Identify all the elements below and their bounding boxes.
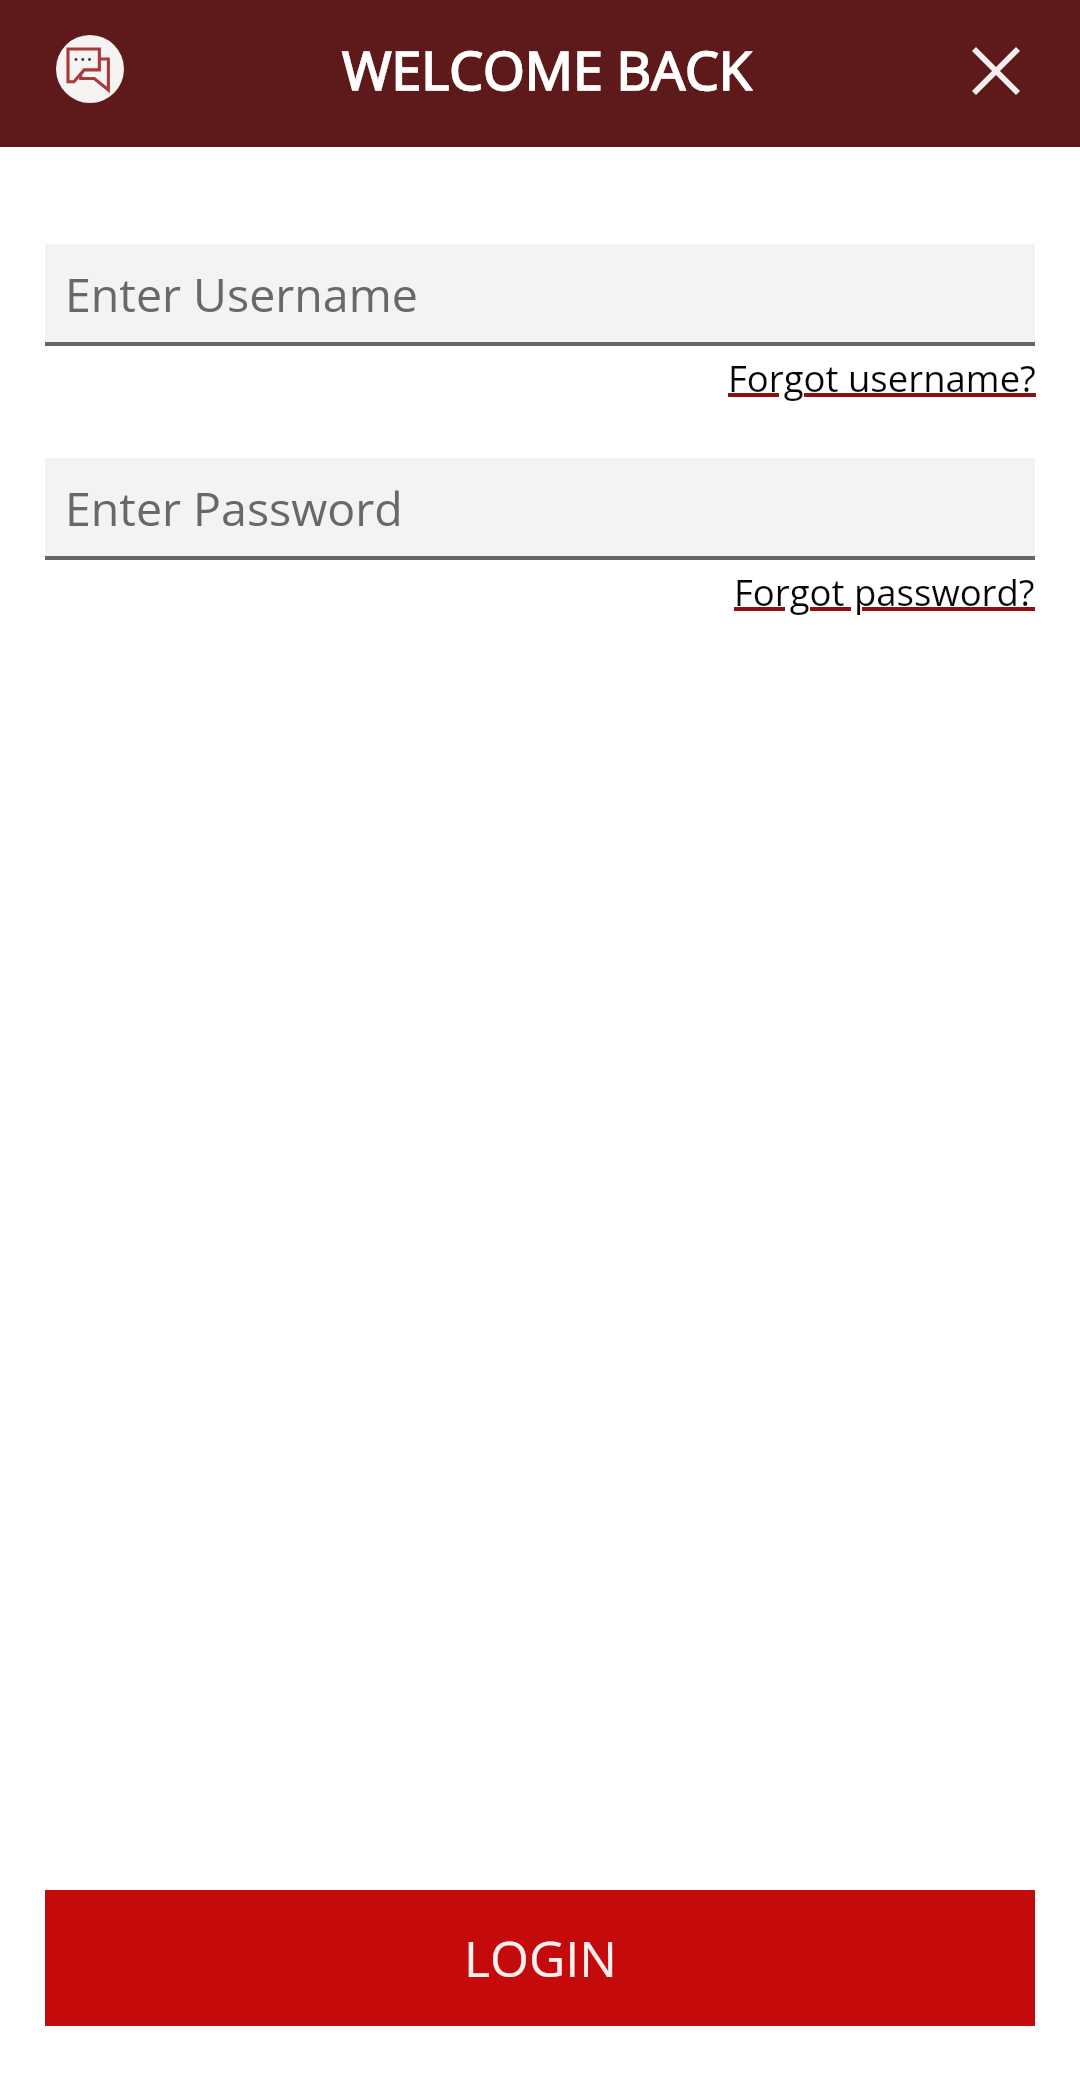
button[interactable]: Close: [960, 35, 1032, 107]
button[interactable]: Forgot password?: [734, 567, 1035, 617]
button[interactable]: Enter Password: [45, 458, 1035, 556]
button[interactable]: LOGIN: [45, 1890, 1035, 2026]
button[interactable]: Messages: [56, 35, 124, 103]
staticText: Enter Password: [65, 476, 403, 539]
button[interactable]: Forgot username?: [728, 353, 1036, 403]
button[interactable]: Enter Username: [45, 244, 1035, 342]
staticText: LOGIN: [464, 1924, 617, 1992]
staticText: Enter Username: [65, 262, 418, 325]
staticText: WELCOME BACK: [342, 33, 752, 106]
